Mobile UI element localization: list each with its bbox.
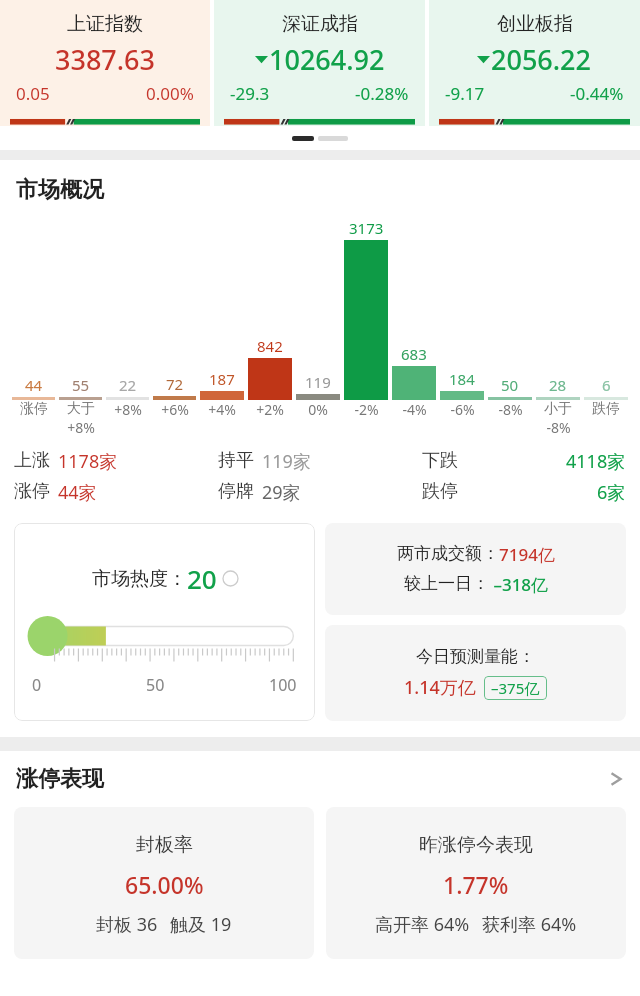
staticText: 0 [32,674,42,696]
button[interactable]: 上证指数 [0,0,210,126]
staticText: 3173 [349,218,384,238]
staticText: 3387.63 [55,41,156,78]
staticText: 65.00% [125,869,204,900]
staticText: 1.77% [443,869,509,900]
staticText: –318亿 [489,573,549,596]
staticText: 0% [308,400,328,419]
staticText: 6家 [597,480,626,505]
staticText: 封板率 [136,833,193,857]
staticText: 市场热度： [92,567,187,591]
staticText: +8% [114,400,142,419]
staticText: +2% [256,400,284,419]
staticText: +8% [67,418,95,437]
staticText: -29.3 [230,82,270,105]
staticText: 2056.22 [491,41,592,78]
staticText: 上证指数 [67,12,143,36]
button[interactable]: 两市成交额： [325,523,626,615]
staticText: 184 [449,369,475,389]
staticText: 7194亿 [499,543,555,566]
staticText: –375亿 [491,678,540,698]
staticText: -0.28% [355,82,409,105]
staticText: 创业板指 [497,12,573,36]
staticText: 封板 36 [96,912,158,937]
staticText: 持平 [218,449,254,472]
staticText: 6 [602,375,611,395]
staticText: 1178家 [58,449,118,474]
button[interactable]: 创业板指 [429,0,640,126]
staticText: 高开率 64% [375,912,470,937]
button[interactable]: 深证成指 [214,0,425,126]
staticText: 29家 [262,480,301,505]
staticText: -9.17 [445,82,485,105]
staticText: 4118家 [566,449,626,474]
staticText: -4% [402,400,427,419]
staticText: 深证成指 [282,12,358,36]
staticText: -8% [546,418,571,437]
staticText: 涨停 [14,480,50,503]
staticText: 较上一日： [404,573,489,594]
staticText: 119家 [262,449,311,474]
staticText: 0.00% [146,82,194,105]
staticText: 187 [209,369,235,389]
staticText: 涨停 [20,400,48,418]
staticText: 842 [257,336,283,356]
button[interactable]: 今日预测量能： [325,625,626,721]
staticText: 10264.92 [269,41,385,78]
button[interactable]: 涨停表现 [16,765,624,793]
staticText: 28 [549,375,567,395]
staticText: 市场概况 [16,176,104,204]
staticText: +6% [161,400,189,419]
staticText: 22 [119,375,137,395]
staticText: +4% [208,400,236,419]
staticText: -2% [354,400,379,419]
button[interactable]: 昨涨停今表现 [326,807,626,959]
staticText: -6% [450,400,475,419]
staticText: 20 [187,561,217,596]
staticText: 昨涨停今表现 [419,833,533,857]
staticText: 停牌 [218,480,254,503]
staticText: 0.05 [16,82,50,105]
staticText: 大于 [67,400,95,418]
staticText: 跌停 [422,480,458,503]
staticText: 上涨 [14,449,50,472]
staticText: -0.44% [570,82,624,105]
staticText: 小于 [544,400,572,418]
staticText: 50 [146,674,165,696]
staticText: 44家 [58,480,97,505]
other: 帮助 [223,571,238,586]
staticText: 涨停表现 [16,765,104,793]
staticText: 119 [305,372,331,392]
staticText: 下跌 [422,449,458,472]
staticText: 100 [269,674,297,696]
staticText: 683 [401,344,427,364]
button[interactable]: 市场热度： [14,523,315,721]
button[interactable]: 封板率 [14,807,314,959]
staticText: 50 [501,375,519,395]
staticText: 触及 19 [170,912,232,937]
staticText: 55 [72,375,90,395]
staticText: 44 [25,375,43,395]
staticText: -8% [498,400,523,419]
staticText: 两市成交额： [397,543,499,564]
staticText: 1.14万亿 [404,675,476,700]
staticText: 72 [166,374,184,394]
staticText: 今日预测量能： [416,646,535,667]
staticText: 获利率 64% [482,912,577,937]
staticText: 跌停 [592,400,620,418]
